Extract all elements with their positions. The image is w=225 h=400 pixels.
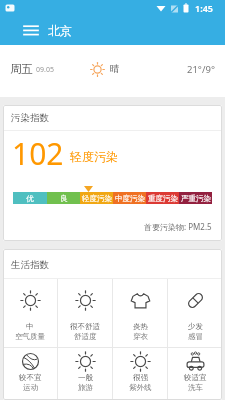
staticText: 生活指数 [11, 259, 49, 271]
staticText: 很不舒适 [70, 322, 100, 331]
staticText: 良 [60, 194, 68, 203]
staticText: 少发 [188, 322, 203, 331]
button[interactable]: 很强 [113, 348, 167, 400]
staticText: 轻度污染 [82, 194, 112, 203]
staticText: 较适宜 [184, 373, 207, 382]
staticText: 09.05 [36, 65, 54, 75]
button[interactable]: 较适宜 [168, 348, 222, 400]
staticText: 1:45 [195, 2, 213, 14]
button[interactable]: 一般 [58, 348, 112, 400]
staticText: 炎热 [133, 322, 148, 331]
staticText: 21°/9° [187, 63, 215, 76]
staticText: 较不宜 [19, 373, 42, 382]
staticText: 严重污染 [181, 194, 211, 203]
staticText: 102 [12, 133, 64, 174]
staticText: 一般 [78, 373, 93, 382]
button[interactable]: 少发 [168, 279, 222, 347]
button[interactable]: 很不舒适 [58, 279, 112, 347]
staticText: 运动 [23, 383, 38, 392]
staticText: 轻度污染 [70, 149, 118, 164]
staticText: 旅游 [78, 383, 93, 392]
staticText: 北京 [48, 23, 72, 38]
staticText: 重度污染 [148, 194, 178, 203]
staticText: 舒适度 [74, 332, 97, 341]
staticText: 中度污染 [115, 194, 145, 203]
staticText: 洗车 [188, 383, 203, 392]
staticText: 空气质量 [15, 332, 45, 341]
staticText: 紫外线 [129, 383, 152, 392]
staticText: 首要污染物: PM2.5 [144, 221, 212, 232]
staticText: 很强 [133, 373, 148, 382]
staticText: 感冒 [188, 332, 203, 341]
button[interactable] [0, 16, 48, 45]
button[interactable]: 污染指数 [3, 105, 222, 241]
button[interactable]: 周五 [0, 45, 225, 97]
button[interactable]: 较不宜 [3, 348, 57, 400]
staticText: 中 [26, 322, 34, 331]
button[interactable]: 炎热 [113, 279, 167, 347]
button[interactable]: 中 [3, 279, 57, 347]
staticText: 污染指数 [11, 112, 49, 124]
staticText: 穿衣 [133, 332, 148, 341]
staticText: 周五 [10, 62, 33, 76]
staticText: 晴 [110, 63, 120, 75]
staticText: 优 [26, 194, 34, 203]
